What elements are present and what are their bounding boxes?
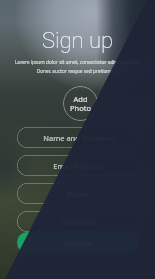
button[interactable]: Email Address [17,155,139,176]
button[interactable]: Name and Surname [17,127,139,148]
staticText: Add Photo [70,94,91,113]
button[interactable]: Phone [17,183,139,204]
staticText: Sign up [0,28,155,54]
button[interactable]: Password [17,211,139,232]
button[interactable]: Add Photo [63,86,98,121]
staticText: Email Address [53,161,103,171]
button[interactable]: Register [17,232,139,253]
staticText: Lorem ipsum dolor sit amet, consectetur … [0,59,155,75]
staticText: Register [64,238,93,248]
staticText: Name and Surname [43,133,114,143]
